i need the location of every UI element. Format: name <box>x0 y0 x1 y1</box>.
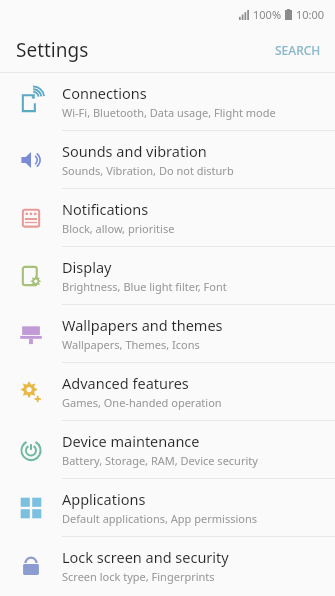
staticText: Applications <box>62 489 146 509</box>
staticText: Default applications, App permissions <box>62 511 257 526</box>
staticText: Connections <box>62 83 147 103</box>
staticText: Display <box>62 257 112 277</box>
staticText: Wi-Fi, Bluetooth, Data usage, Flight mod… <box>62 105 276 120</box>
staticText: Lock screen and security <box>62 547 229 567</box>
other: Advanced features <box>19 380 43 404</box>
staticText: Notifications <box>62 199 149 219</box>
button[interactable]: Notifications <box>0 189 335 246</box>
other: Display <box>19 264 43 288</box>
staticText: SEARCH <box>275 42 321 58</box>
staticText: Block, allow, prioritise <box>62 221 175 236</box>
staticText: 100% <box>253 7 282 22</box>
staticText: 10:00 <box>296 7 325 22</box>
staticText: Brightness, Blue light filter, Font <box>62 279 227 294</box>
other: Sounds and vibration <box>19 148 43 172</box>
other: Applications <box>19 496 43 520</box>
staticText: Screen lock type, Fingerprints <box>62 569 215 584</box>
other: Device maintenance <box>19 438 43 462</box>
button[interactable]: Display <box>0 247 335 304</box>
staticText: Battery, Storage, RAM, Device security <box>62 453 258 468</box>
button[interactable]: Connections <box>0 73 335 130</box>
button[interactable]: Advanced features <box>0 363 335 420</box>
button[interactable]: SEARCH <box>261 34 335 66</box>
other: Notifications <box>19 206 43 230</box>
staticText: Advanced features <box>62 373 189 393</box>
staticText: Wallpapers, Themes, Icons <box>62 337 200 352</box>
button[interactable]: Wallpapers and themes <box>0 305 335 362</box>
staticText: Games, One-handed operation <box>62 395 222 410</box>
staticText: Settings <box>16 37 89 63</box>
button[interactable]: Sounds and vibration <box>0 131 335 188</box>
button[interactable]: Device maintenance <box>0 421 335 478</box>
button[interactable]: Lock screen and security <box>0 537 335 594</box>
button[interactable]: Applications <box>0 479 335 536</box>
other: Lock screen and security <box>19 554 43 578</box>
staticText: Device maintenance <box>62 431 200 451</box>
staticText: Sounds, Vibration, Do not disturb <box>62 163 234 178</box>
staticText: Wallpapers and themes <box>62 315 223 335</box>
other: Connections <box>19 90 43 114</box>
staticText: Sounds and vibration <box>62 141 207 161</box>
other: Wallpapers and themes <box>19 322 43 346</box>
